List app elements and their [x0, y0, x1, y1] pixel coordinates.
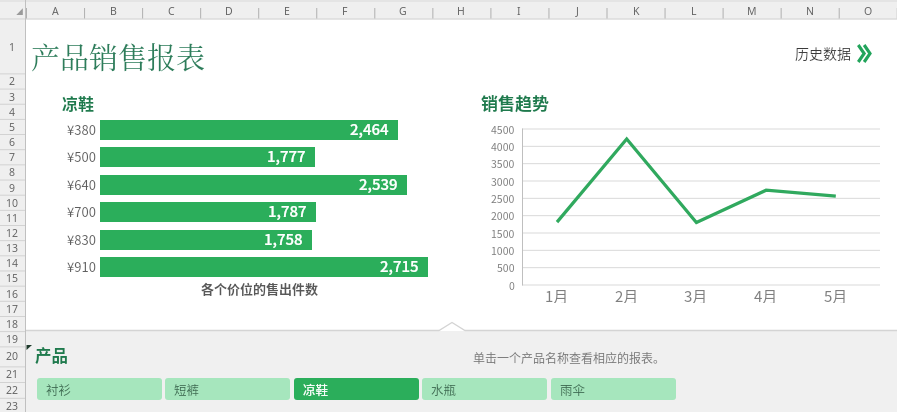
- staticText: 3500: [491, 156, 515, 171]
- button[interactable]: 产品销售报表: [31, 36, 206, 78]
- staticText: E: [284, 4, 290, 18]
- staticText: 9: [9, 181, 16, 195]
- staticText: 销售趋势: [481, 90, 549, 115]
- button[interactable]: 短裤: [165, 378, 290, 400]
- staticText: G: [399, 4, 407, 18]
- staticText: N: [806, 4, 814, 18]
- staticText: 19: [6, 332, 19, 346]
- staticText: 凉鞋: [62, 91, 95, 114]
- staticText: 雨伞: [560, 380, 586, 398]
- staticText: 11: [6, 211, 19, 225]
- staticText: B: [110, 4, 117, 18]
- staticText: L: [691, 4, 697, 18]
- staticText: ¥700: [67, 202, 96, 220]
- staticText: 2000: [491, 208, 515, 223]
- staticText: 8: [9, 165, 16, 179]
- staticText: 2,464: [350, 118, 389, 138]
- staticText: 1,777: [267, 145, 306, 165]
- staticText: 22: [6, 383, 19, 397]
- button[interactable]: 凉鞋: [294, 378, 419, 400]
- button[interactable]: 衬衫: [37, 378, 162, 400]
- staticText: 21: [6, 367, 19, 381]
- staticText: K: [633, 4, 640, 18]
- staticText: 7: [9, 150, 16, 164]
- staticText: H: [457, 4, 465, 18]
- staticText: 15: [6, 271, 19, 285]
- staticText: 14: [6, 256, 19, 270]
- staticText: 4500: [491, 122, 515, 137]
- staticText: ¥380: [67, 120, 96, 138]
- staticText: 0: [509, 278, 515, 293]
- staticText: 1000: [491, 243, 515, 258]
- staticText: 16: [6, 287, 19, 301]
- button[interactable]: 历史数据: [795, 43, 872, 63]
- other: View historical data: [858, 45, 872, 62]
- staticText: 2500: [491, 191, 515, 206]
- staticText: 2,715: [380, 255, 419, 275]
- staticText: 历史数据: [795, 43, 851, 63]
- staticText: 10: [6, 196, 19, 210]
- staticText: A: [52, 4, 59, 18]
- staticText: I: [517, 4, 521, 18]
- staticText: 12: [6, 226, 19, 240]
- staticText: 1500: [491, 226, 515, 241]
- staticText: 1: [9, 40, 16, 54]
- staticText: 3000: [491, 174, 515, 189]
- staticText: 2,539: [359, 173, 398, 193]
- staticText: 单击一个产品名称查看相应的报表。: [473, 349, 666, 366]
- staticText: 4: [9, 105, 16, 119]
- staticText: 5: [9, 120, 16, 134]
- staticText: D: [225, 4, 233, 18]
- staticText: 凉鞋: [303, 380, 329, 398]
- staticText: 17: [6, 302, 19, 316]
- staticText: 短裤: [174, 380, 200, 398]
- staticText: 各个价位的售出件数: [201, 279, 319, 298]
- staticText: 5月: [824, 285, 848, 303]
- staticText: C: [168, 4, 175, 18]
- staticText: 500: [497, 260, 515, 275]
- staticText: 产品销售报表: [31, 36, 206, 78]
- staticText: 20: [6, 349, 19, 363]
- staticText: 1,787: [268, 200, 307, 220]
- staticText: 1,758: [264, 228, 303, 248]
- staticText: 6: [9, 135, 16, 149]
- staticText: 1月: [545, 285, 569, 303]
- staticText: 23: [6, 399, 19, 412]
- staticText: 3月: [684, 285, 708, 303]
- staticText: F: [342, 4, 348, 18]
- staticText: 2月: [615, 285, 639, 303]
- staticText: 4000: [491, 139, 515, 154]
- staticText: 18: [6, 317, 19, 331]
- staticText: ¥910: [67, 257, 96, 275]
- staticText: M: [747, 4, 757, 18]
- staticText: 13: [6, 241, 19, 255]
- staticText: 2: [9, 74, 16, 88]
- staticText: 4月: [754, 285, 778, 303]
- staticText: 水瓶: [431, 380, 457, 398]
- button[interactable]: 雨伞: [551, 378, 676, 400]
- staticText: ¥500: [67, 147, 96, 165]
- staticText: ¥830: [67, 230, 96, 248]
- staticText: 3: [9, 90, 16, 104]
- staticText: ¥640: [67, 175, 96, 193]
- staticText: O: [864, 4, 873, 18]
- staticText: 衬衫: [46, 380, 72, 398]
- staticText: 产品: [35, 343, 68, 367]
- staticText: J: [576, 4, 579, 18]
- button[interactable]: 水瓶: [422, 378, 547, 400]
